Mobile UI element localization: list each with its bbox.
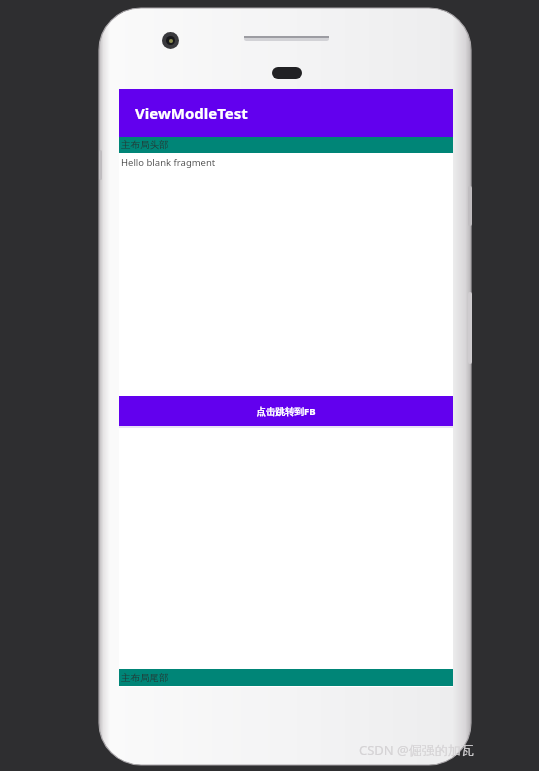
staticText: ViewModleTest	[135, 103, 248, 123]
staticText: Hello blank fragment	[121, 156, 216, 169]
staticText: 点击跳转到FB	[256, 405, 316, 418]
button[interactable]: 点击跳转到FB	[119, 396, 453, 426]
staticText: 主布局尾部	[121, 672, 169, 684]
staticText: CSDN @倔强的加瓦	[359, 741, 474, 759]
staticText: 主布局头部	[121, 139, 169, 151]
